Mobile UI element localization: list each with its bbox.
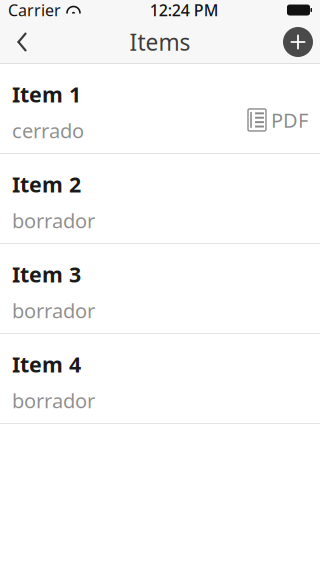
staticText: Carrier xyxy=(8,0,61,21)
staticText: PDF xyxy=(271,107,308,133)
button[interactable]: Item 4 xyxy=(0,334,320,424)
staticText: Item 2 xyxy=(12,170,81,198)
staticText: Item 3 xyxy=(12,260,81,288)
staticText: Item 1 xyxy=(12,80,81,108)
staticText: borrador xyxy=(12,207,95,234)
button[interactable]: Item 3 xyxy=(0,244,320,334)
staticText: Items xyxy=(129,27,190,57)
staticText: borrador xyxy=(12,297,95,324)
button[interactable]: Back xyxy=(0,20,44,64)
button[interactable]: Add xyxy=(276,20,320,64)
staticText: cerrado xyxy=(12,117,84,144)
button[interactable]: Item 2 xyxy=(0,154,320,244)
button[interactable]: Item 1 xyxy=(0,64,320,154)
staticText: borrador xyxy=(12,387,95,414)
staticText: 12:24 PM xyxy=(150,0,219,21)
staticText: Item 4 xyxy=(12,350,81,378)
